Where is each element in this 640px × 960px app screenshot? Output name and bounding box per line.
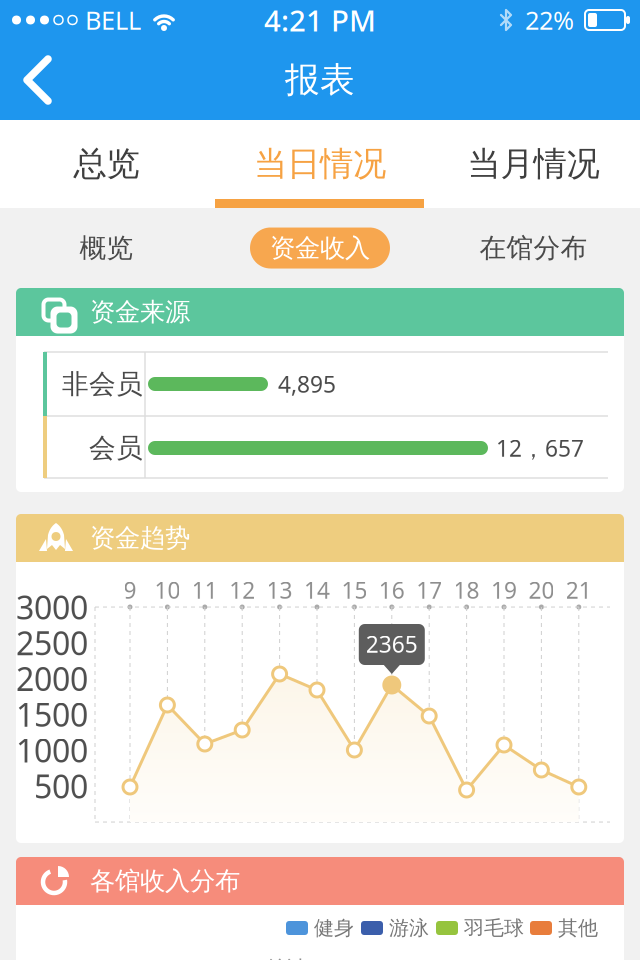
button[interactable]: 在馆分布	[427, 208, 640, 288]
staticText: 资金收入	[270, 232, 370, 263]
staticText: BELL	[85, 3, 141, 37]
button[interactable]: 概览	[0, 208, 213, 288]
staticText: 当日情况	[254, 143, 386, 184]
staticText: 4:21 PM	[264, 0, 376, 39]
staticText: 19	[491, 575, 517, 605]
staticText: 报表	[285, 59, 355, 101]
staticText: 17	[416, 575, 442, 605]
staticText: 4,895	[278, 369, 336, 399]
staticText: 1500	[16, 693, 88, 736]
staticText: 其他	[558, 916, 598, 940]
staticText: 1000	[16, 729, 88, 771]
button[interactable]: 当月情况	[427, 120, 640, 208]
staticText: 总计: 3300	[265, 954, 367, 960]
staticText: 500	[34, 765, 88, 807]
staticText: 11	[192, 575, 218, 605]
button[interactable]: Back	[10, 51, 80, 109]
staticText: 9	[123, 575, 136, 605]
staticText: 22%	[525, 3, 574, 37]
staticText: 非会员	[62, 368, 143, 400]
staticText: 18	[454, 575, 480, 605]
staticText: 各馆收入分布	[90, 865, 240, 896]
staticText: 当月情况	[467, 143, 599, 184]
staticText: 游泳	[389, 916, 429, 940]
button[interactable]: 总览	[0, 120, 213, 208]
staticText: 资金来源	[90, 296, 190, 327]
staticText: 总览	[73, 143, 139, 184]
staticText: 羽毛球	[464, 916, 524, 940]
staticText: 12	[229, 575, 255, 605]
staticText: 12，657	[496, 433, 584, 463]
staticText: 健身	[314, 916, 354, 940]
staticText: 13	[267, 575, 293, 605]
staticText: 15	[341, 575, 367, 605]
staticText: 2000	[16, 657, 88, 700]
button[interactable]: 资金收入	[213, 208, 427, 288]
staticText: 16	[379, 575, 405, 605]
staticText: 14	[304, 575, 330, 605]
staticText: 2500	[16, 622, 88, 664]
button[interactable]: 当日情况	[213, 120, 427, 208]
staticText: 在馆分布	[479, 232, 587, 264]
staticText: 20	[528, 575, 554, 605]
staticText: 10	[154, 575, 180, 605]
staticText: 资金趋势	[90, 522, 190, 553]
staticText: 21	[566, 575, 592, 605]
staticText: 概览	[79, 232, 133, 264]
staticText: 会员	[89, 432, 143, 464]
staticText: 2365	[366, 629, 418, 659]
staticText: 3000	[16, 586, 88, 628]
